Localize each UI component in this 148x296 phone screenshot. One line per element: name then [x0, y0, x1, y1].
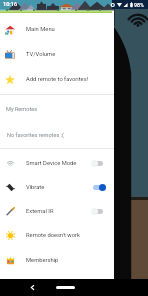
- staticText: Vibrate: [26, 184, 91, 191]
- staticText: Main Menu: [26, 26, 55, 33]
- staticText: Add remote to favorites!: [26, 76, 89, 83]
- staticText: 98%: [134, 2, 144, 8]
- button[interactable]: Back: [27, 282, 38, 293]
- staticText: Remote doesn't work: [26, 232, 80, 239]
- staticText: My Remotes: [6, 106, 38, 113]
- button[interactable]: Membership: [0, 248, 114, 273]
- staticText: External IR: [26, 208, 91, 215]
- button[interactable]: Remote doesn't work: [0, 223, 114, 248]
- button[interactable]: TV/Volume: [0, 42, 114, 67]
- staticText: No favorites remotes :(: [7, 132, 64, 139]
- staticText: Smart Device Mode: [26, 160, 91, 167]
- button[interactable]: No favorites remotes :(: [0, 123, 114, 148]
- staticText: Membership: [26, 257, 59, 264]
- staticText: 10:16: [3, 1, 18, 8]
- button[interactable]: Home: [56, 286, 75, 289]
- button[interactable]: Add remote to favorites!: [0, 67, 114, 92]
- button[interactable]: External IR: [0, 199, 114, 223]
- button[interactable]: Smart Device Mode: [0, 151, 114, 175]
- staticText: TV/Volume: [26, 51, 56, 58]
- button[interactable]: Vibrate: [0, 175, 114, 199]
- button[interactable]: Main Menu: [0, 17, 114, 42]
